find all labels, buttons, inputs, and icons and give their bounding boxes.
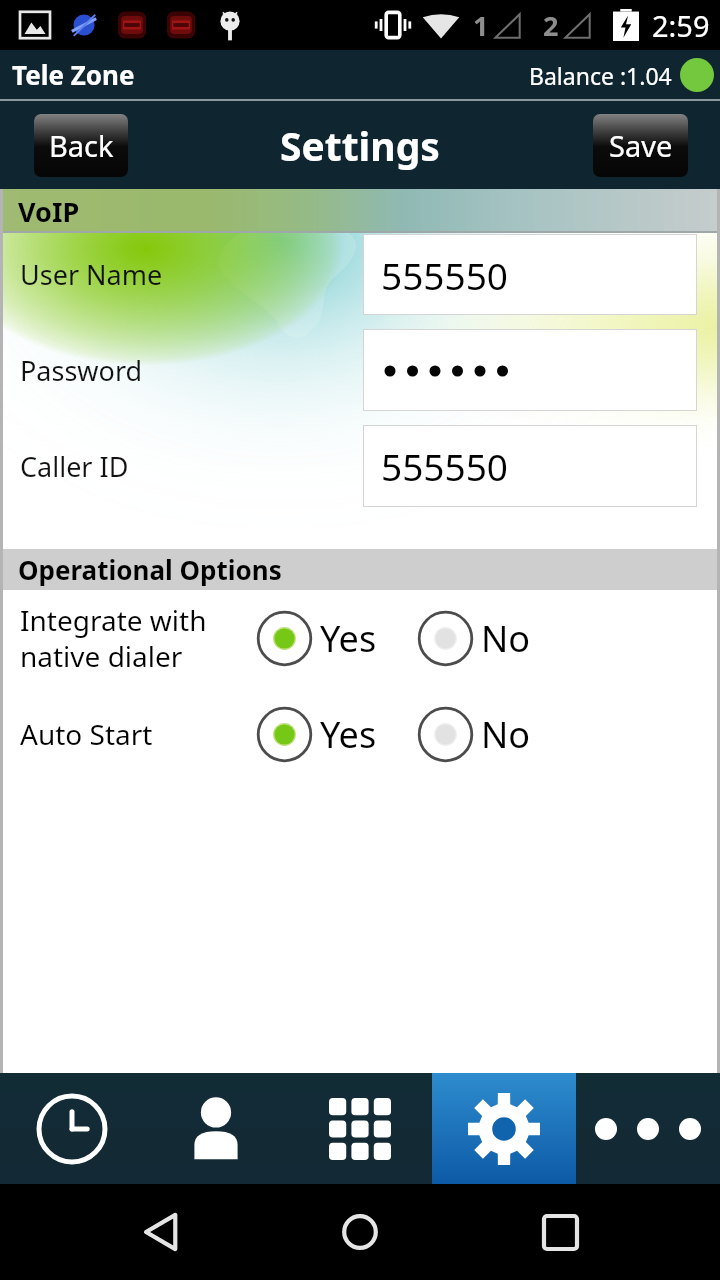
button[interactable]: No xyxy=(417,706,531,763)
button[interactable]: Save xyxy=(593,114,688,177)
staticText: 1 xyxy=(473,7,489,44)
staticText: No xyxy=(481,710,531,759)
button[interactable]: 555550 xyxy=(363,234,697,315)
button[interactable]: Back xyxy=(34,114,128,177)
button[interactable]: Home xyxy=(337,1209,383,1255)
staticText: Back xyxy=(49,126,114,165)
button[interactable]: Yes xyxy=(256,706,377,763)
staticText: Settings xyxy=(280,119,440,172)
button[interactable]: Back xyxy=(138,1209,184,1255)
button[interactable] xyxy=(363,329,697,411)
button[interactable]: Dialpad xyxy=(288,1073,432,1184)
staticText: Yes xyxy=(320,614,377,663)
staticText: 2 xyxy=(543,7,559,44)
button[interactable]: Recent calls xyxy=(0,1073,144,1184)
button[interactable]: Recents xyxy=(537,1209,583,1255)
staticText: VoIP xyxy=(18,193,80,230)
staticText: Integrate with native dialer xyxy=(20,601,260,675)
button[interactable]: Contacts xyxy=(144,1073,288,1184)
button[interactable]: Yes xyxy=(256,610,377,667)
button[interactable]: Settings xyxy=(432,1073,576,1184)
staticText: 555550 xyxy=(381,441,508,491)
staticText: Password xyxy=(20,352,143,389)
staticText: User Name xyxy=(20,256,163,293)
staticText: Caller ID xyxy=(20,448,129,485)
button[interactable]: More xyxy=(576,1073,720,1184)
staticText: 555550 xyxy=(381,250,508,300)
button[interactable]: No xyxy=(417,610,531,667)
staticText: Yes xyxy=(320,710,377,759)
button[interactable]: 555550 xyxy=(363,425,697,507)
staticText: 2:59 xyxy=(652,6,710,45)
staticText: Operational Options xyxy=(18,552,282,587)
staticText: Tele Zone xyxy=(12,57,135,92)
staticText: Auto Start xyxy=(20,715,260,753)
staticText: No xyxy=(481,614,531,663)
staticText: Save xyxy=(609,126,673,165)
staticText: Balance :1.04 xyxy=(529,60,672,91)
